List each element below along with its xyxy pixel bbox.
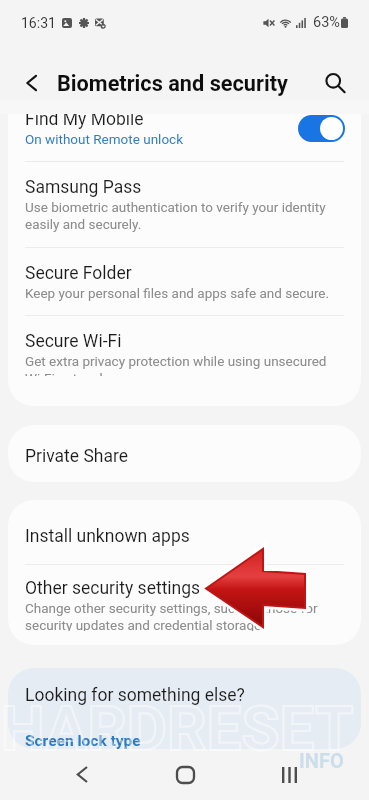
staticText: HARDRESET [1,692,354,765]
staticText: Looking for something else? [25,685,245,706]
staticText: Biometrics and security [57,71,288,96]
staticText: 63% [313,14,340,31]
staticText: 16:31 [21,15,56,31]
button[interactable]: Home [161,749,209,800]
button[interactable]: Search [319,67,351,99]
staticText: Install unknown apps [25,526,190,547]
staticText: Secure Folder [25,263,132,284]
staticText: Find My Mobile [25,110,144,130]
button[interactable]: Secure Folder [8,248,361,315]
staticText: INFO [299,749,344,772]
button[interactable]: Recents [265,749,313,800]
staticText: Change other security settings, such as … [25,600,318,631]
button[interactable]: Find My Mobile switch [298,115,345,142]
staticText: Get extra privacy protection while using… [25,353,327,376]
button[interactable]: Samsung Pass [8,162,361,247]
button[interactable]: Navigate up [16,67,48,99]
staticText: Secure Wi-Fi [25,331,122,352]
staticText: On without Remote unlock [25,131,184,147]
staticText: Private Share [25,446,129,467]
staticText: Other security settings [25,578,201,599]
button[interactable]: Secure Wi-Fi [8,316,361,390]
button[interactable]: Screen lock type [25,732,141,749]
staticText: Samsung Pass [25,177,142,198]
button[interactable]: Back [58,749,106,800]
button[interactable]: Private Share [8,425,361,482]
button[interactable]: Install unknown apps [8,500,361,564]
staticText: Screen lock type [25,732,141,749]
staticText: Use biometric authentication to verify y… [25,199,326,233]
staticText: Keep your personal files and apps safe a… [25,285,330,301]
button[interactable]: Other security settings [8,565,361,645]
button[interactable]: Find My Mobile [8,110,361,161]
